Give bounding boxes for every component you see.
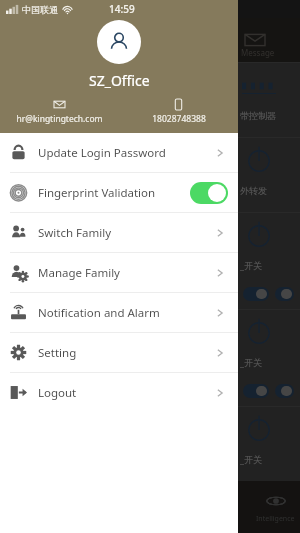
staticText: Intelligence bbox=[256, 514, 295, 524]
staticText: _开关 bbox=[240, 259, 262, 271]
staticText: Update Login Password bbox=[38, 145, 166, 161]
staticText: Switch Family bbox=[38, 225, 112, 241]
staticText: 带控制器 bbox=[240, 110, 276, 121]
button[interactable]: Fingerprint Validation bbox=[0, 173, 238, 213]
staticText: 中国联通 bbox=[22, 4, 58, 15]
button[interactable]: Update Login Password bbox=[0, 133, 238, 173]
staticText: Notification and Alarm bbox=[38, 305, 160, 321]
staticText: 18028748388 bbox=[152, 113, 206, 125]
staticText: Message bbox=[241, 47, 275, 58]
button[interactable]: Logout bbox=[0, 373, 238, 412]
button[interactable]: Switch Family bbox=[0, 213, 238, 253]
staticText: 14:59 bbox=[109, 2, 135, 16]
button[interactable]: Notification and Alarm bbox=[0, 293, 238, 333]
button[interactable]: Manage Family bbox=[0, 253, 238, 293]
staticText: Setting bbox=[38, 345, 77, 361]
button[interactable] bbox=[190, 182, 228, 204]
staticText: SZ_Office bbox=[89, 71, 150, 90]
staticText: Fingerprint Validation bbox=[38, 185, 156, 201]
staticText: _开关 bbox=[240, 356, 262, 368]
staticText: 外转发 bbox=[240, 185, 267, 196]
staticText: Manage Family bbox=[38, 265, 120, 281]
staticText: _开关 bbox=[240, 453, 262, 465]
button[interactable]: Setting bbox=[0, 333, 238, 373]
staticText: Logout bbox=[38, 385, 77, 401]
staticText: hr@kingtingtech.com bbox=[16, 113, 103, 125]
